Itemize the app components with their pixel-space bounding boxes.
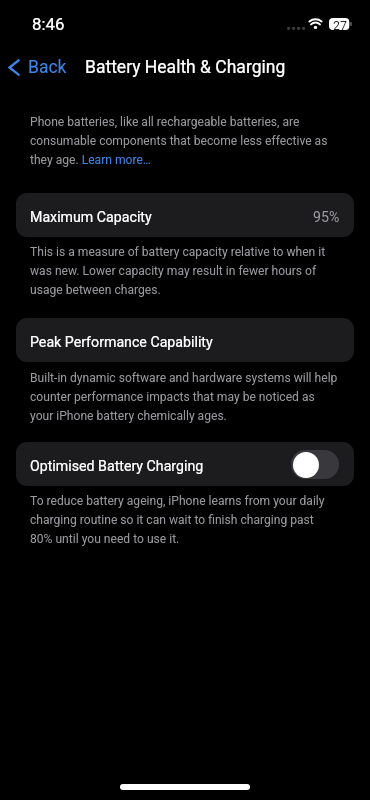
staticText: Battery Health & Charging bbox=[85, 57, 286, 78]
staticText: Back bbox=[28, 57, 67, 78]
staticText: 27 bbox=[333, 18, 347, 30]
staticText: Phone batteries, like all rechargeable b… bbox=[30, 111, 338, 168]
staticText: Optimised Battery Charging bbox=[30, 458, 204, 475]
button[interactable]: Peak Performance Capability bbox=[16, 318, 354, 362]
staticText: Maximum Capacity bbox=[30, 209, 152, 226]
button[interactable]: Optimised Battery Charging bbox=[16, 442, 354, 486]
staticText: 95% bbox=[313, 209, 340, 226]
staticText: This is a measure of battery capacity re… bbox=[30, 241, 338, 298]
staticText: 8:46 bbox=[32, 14, 65, 34]
button[interactable]: Back bbox=[0, 49, 77, 86]
staticText: To reduce battery ageing, iPhone learns … bbox=[30, 490, 338, 547]
button[interactable]: Optimised Battery Charging toggle bbox=[291, 450, 339, 479]
button[interactable]: Maximum Capacity bbox=[16, 193, 354, 237]
staticText: Peak Performance Capability bbox=[30, 334, 213, 351]
staticText: Built-in dynamic software and hardware s… bbox=[30, 367, 338, 424]
